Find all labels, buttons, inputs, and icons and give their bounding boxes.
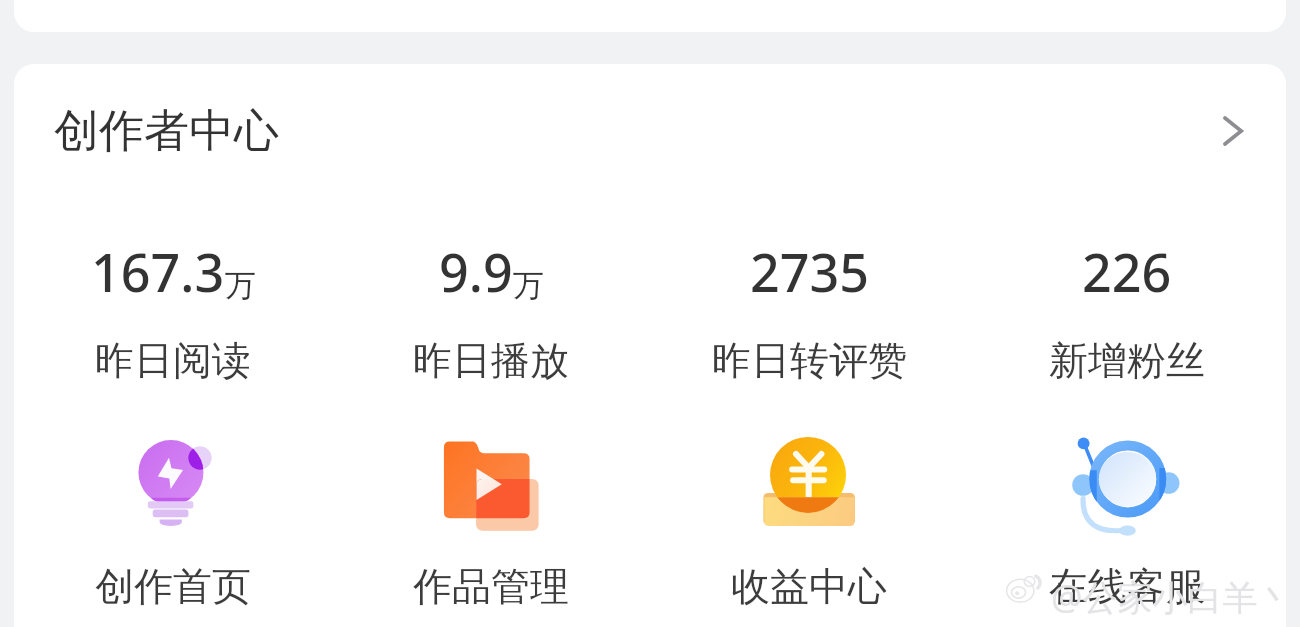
- button[interactable]: 创作者中心: [14, 76, 1286, 186]
- staticText: 万: [225, 266, 256, 305]
- staticText: 226: [1082, 236, 1172, 307]
- staticText: 昨日转评赞: [712, 336, 907, 385]
- staticText: 167.3: [91, 236, 225, 307]
- button[interactable]: 226: [968, 236, 1286, 385]
- staticText: 收益中心: [731, 562, 887, 611]
- staticText: 在线客服: [1049, 562, 1205, 611]
- button[interactable]: 收益中心: [650, 425, 968, 611]
- button[interactable]: 9.9: [332, 236, 650, 385]
- staticText: 新增粉丝: [1049, 336, 1205, 385]
- staticText: 2735: [750, 236, 869, 307]
- other: 进入创作者中心: [1208, 109, 1252, 153]
- button[interactable]: 167.3: [14, 236, 332, 385]
- staticText: 9.9: [439, 236, 513, 307]
- staticText: 昨日播放: [413, 336, 569, 385]
- button[interactable]: 作品管理: [332, 425, 650, 611]
- staticText: 创作首页: [95, 562, 251, 611]
- button[interactable]: 2735: [650, 236, 968, 385]
- staticText: 昨日阅读: [95, 336, 251, 385]
- button[interactable]: 创作首页: [14, 425, 332, 611]
- staticText: 作品管理: [413, 562, 569, 611]
- staticText: 万: [513, 266, 544, 305]
- staticText: @公家小白羊丶: [1051, 573, 1293, 621]
- button[interactable]: 在线客服: [968, 425, 1286, 611]
- staticText: 创作者中心: [54, 103, 279, 160]
